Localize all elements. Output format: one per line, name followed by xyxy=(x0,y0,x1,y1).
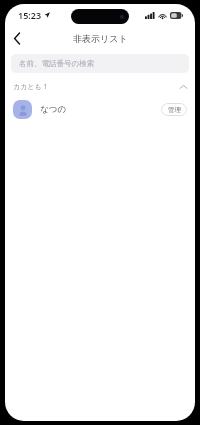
staticText: 非表示リスト xyxy=(73,33,128,44)
staticText: カカとも 1 xyxy=(13,82,48,92)
staticText: 15:23 xyxy=(18,9,42,21)
button[interactable]: 管理 xyxy=(161,103,187,116)
staticText: 名前、電話番号の検索 xyxy=(19,59,95,68)
staticText: 管理 xyxy=(168,106,181,114)
button[interactable]: なつの xyxy=(5,95,195,123)
button[interactable]: 戻る xyxy=(5,26,29,50)
staticText: なつの xyxy=(40,104,67,115)
button[interactable]: カカとも 1 xyxy=(5,79,195,95)
button[interactable]: 名前、電話番号の検索 xyxy=(11,54,189,73)
